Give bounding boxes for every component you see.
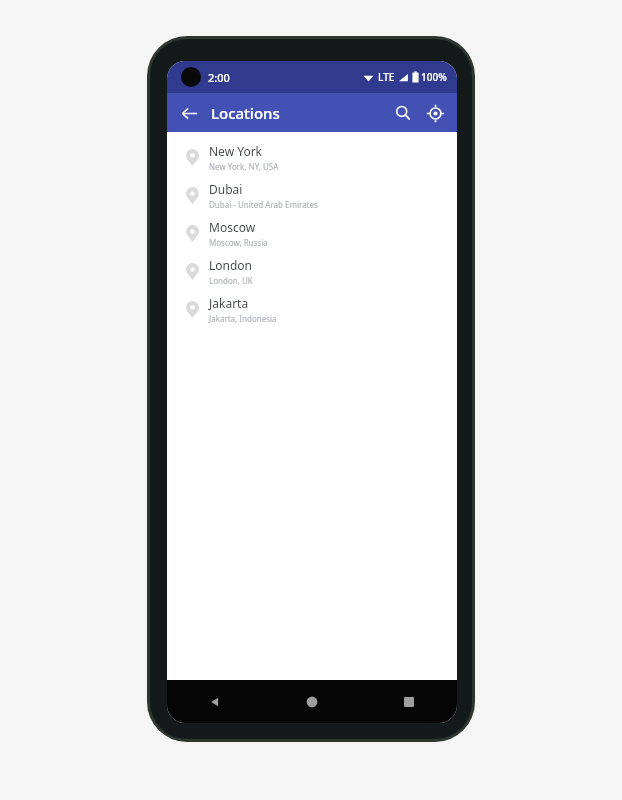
staticText: New York [209, 143, 263, 159]
staticText: Jakarta [209, 295, 249, 311]
staticText: Dubai - United Arab Emirates [209, 199, 318, 210]
staticText: London [209, 257, 253, 273]
staticText: Locations [211, 103, 280, 123]
button[interactable]: Home [263, 680, 360, 723]
button[interactable]: Back [173, 97, 205, 129]
button[interactable]: Moscow [167, 214, 457, 252]
staticText: Dubai [209, 181, 243, 197]
staticText: 2:00 [208, 70, 230, 85]
staticText: London, UK [209, 275, 253, 286]
button[interactable]: Jakarta [167, 290, 457, 328]
button[interactable]: Back [167, 680, 263, 723]
staticText: 100% [421, 70, 447, 84]
button[interactable]: London [167, 252, 457, 290]
button[interactable]: My location [419, 97, 451, 129]
button[interactable]: New York [167, 138, 457, 176]
staticText: LTE [378, 70, 395, 84]
button[interactable]: Dubai [167, 176, 457, 214]
staticText: Jakarta, Indonesia [209, 313, 277, 324]
staticText: Moscow [209, 219, 256, 235]
staticText: New York, NY, USA [209, 161, 279, 172]
button[interactable]: Search [387, 97, 419, 129]
staticText: Moscow, Russia [209, 237, 268, 248]
button[interactable]: Recent apps [360, 680, 457, 723]
